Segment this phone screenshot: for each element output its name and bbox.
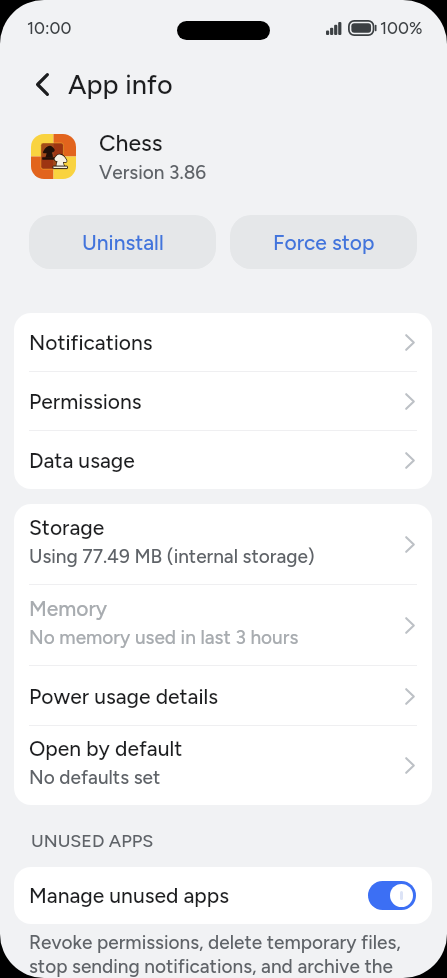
staticText: Open by default	[29, 736, 183, 761]
button[interactable]: Back	[23, 65, 61, 103]
button[interactable]: Force stop	[230, 215, 417, 269]
staticText: Uninstall	[82, 230, 164, 255]
staticText: Memory	[29, 596, 108, 621]
button[interactable]: Power usage details	[14, 666, 432, 726]
staticText: 10:00	[27, 18, 72, 38]
staticText: Data usage	[29, 448, 135, 473]
button[interactable]: Permissions	[14, 372, 432, 431]
staticText: Version 3.86	[99, 161, 207, 184]
staticText: Chess	[99, 129, 163, 157]
staticText: Storage	[29, 515, 105, 540]
staticText: Force stop	[273, 230, 375, 255]
staticText: App info	[68, 68, 173, 100]
staticText: No defaults set	[29, 766, 161, 789]
button[interactable]: Storage	[14, 504, 432, 585]
staticText: Power usage details	[29, 684, 218, 709]
button[interactable]: Memory	[14, 585, 432, 666]
staticText: Permissions	[29, 389, 142, 414]
button[interactable]: Data usage	[14, 431, 432, 489]
staticText: 100%	[380, 18, 423, 38]
button[interactable]: Manage unused apps	[14, 867, 432, 924]
staticText: Manage unused apps	[29, 883, 368, 908]
staticText: Revoke permissions, delete temporary fil…	[29, 930, 417, 978]
staticText: Using 77.49 MB (internal storage)	[29, 545, 315, 568]
staticText: Notifications	[29, 330, 153, 355]
button[interactable]: Manage unused apps toggle	[368, 881, 416, 910]
button[interactable]: Open by default	[14, 726, 432, 805]
staticText: No memory used in last 3 hours	[29, 626, 299, 649]
staticText: UNUSED APPS	[31, 830, 154, 852]
button[interactable]: Uninstall	[29, 215, 216, 269]
button[interactable]: Notifications	[14, 313, 432, 372]
